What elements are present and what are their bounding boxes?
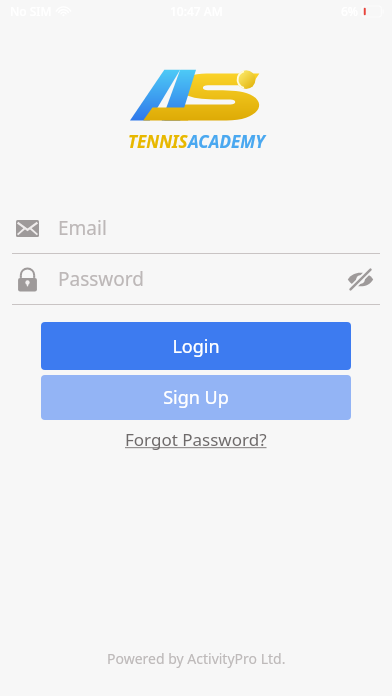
staticText: Sign Up (163, 385, 229, 410)
other: AS Tennis Academy logo (130, 66, 262, 128)
button[interactable]: Password (0, 254, 392, 304)
staticText: Email (58, 215, 378, 241)
staticText: ACADEMY (188, 130, 265, 153)
staticText: 6% (341, 3, 359, 19)
staticText: Powered by ActivityPro Ltd. (107, 649, 286, 668)
staticText: Login (172, 334, 220, 359)
staticText: 10:47 AM (170, 3, 223, 19)
button[interactable]: Forgot Password? (113, 424, 279, 455)
staticText: Forgot Password? (125, 428, 267, 451)
staticText: No SIM (10, 3, 52, 19)
button[interactable]: Show password (342, 261, 378, 297)
button[interactable]: Login (41, 322, 351, 370)
button[interactable]: Sign Up (41, 375, 351, 420)
staticText: Password (58, 266, 342, 292)
button[interactable]: Email (0, 203, 392, 253)
staticText: TENNIS (128, 130, 188, 153)
